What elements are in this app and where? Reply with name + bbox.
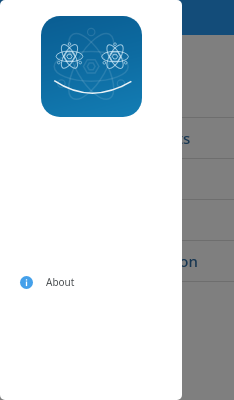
staticText: Exoplanets [112, 128, 191, 148]
button[interactable] [0, 282, 234, 322]
staticText: About [46, 275, 75, 289]
button[interactable] [0, 159, 234, 199]
button[interactable] [0, 200, 234, 240]
staticText: Constellation [103, 251, 198, 271]
button[interactable]: Constellation [0, 241, 234, 281]
button[interactable]: About [0, 262, 182, 302]
other: About [20, 276, 33, 289]
button[interactable]: Exoplanets [0, 118, 234, 158]
